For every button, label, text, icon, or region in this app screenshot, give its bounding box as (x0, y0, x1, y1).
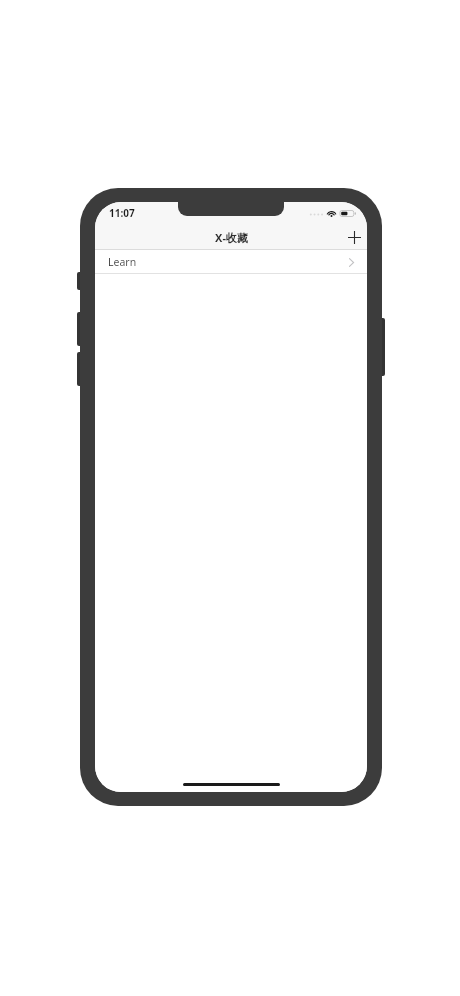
staticText: Learn (108, 255, 137, 269)
staticText: 11:07 (109, 206, 135, 220)
button[interactable]: Learn (95, 250, 367, 274)
button[interactable]: Add (341, 224, 367, 250)
staticText: X-收藏 (215, 230, 248, 245)
